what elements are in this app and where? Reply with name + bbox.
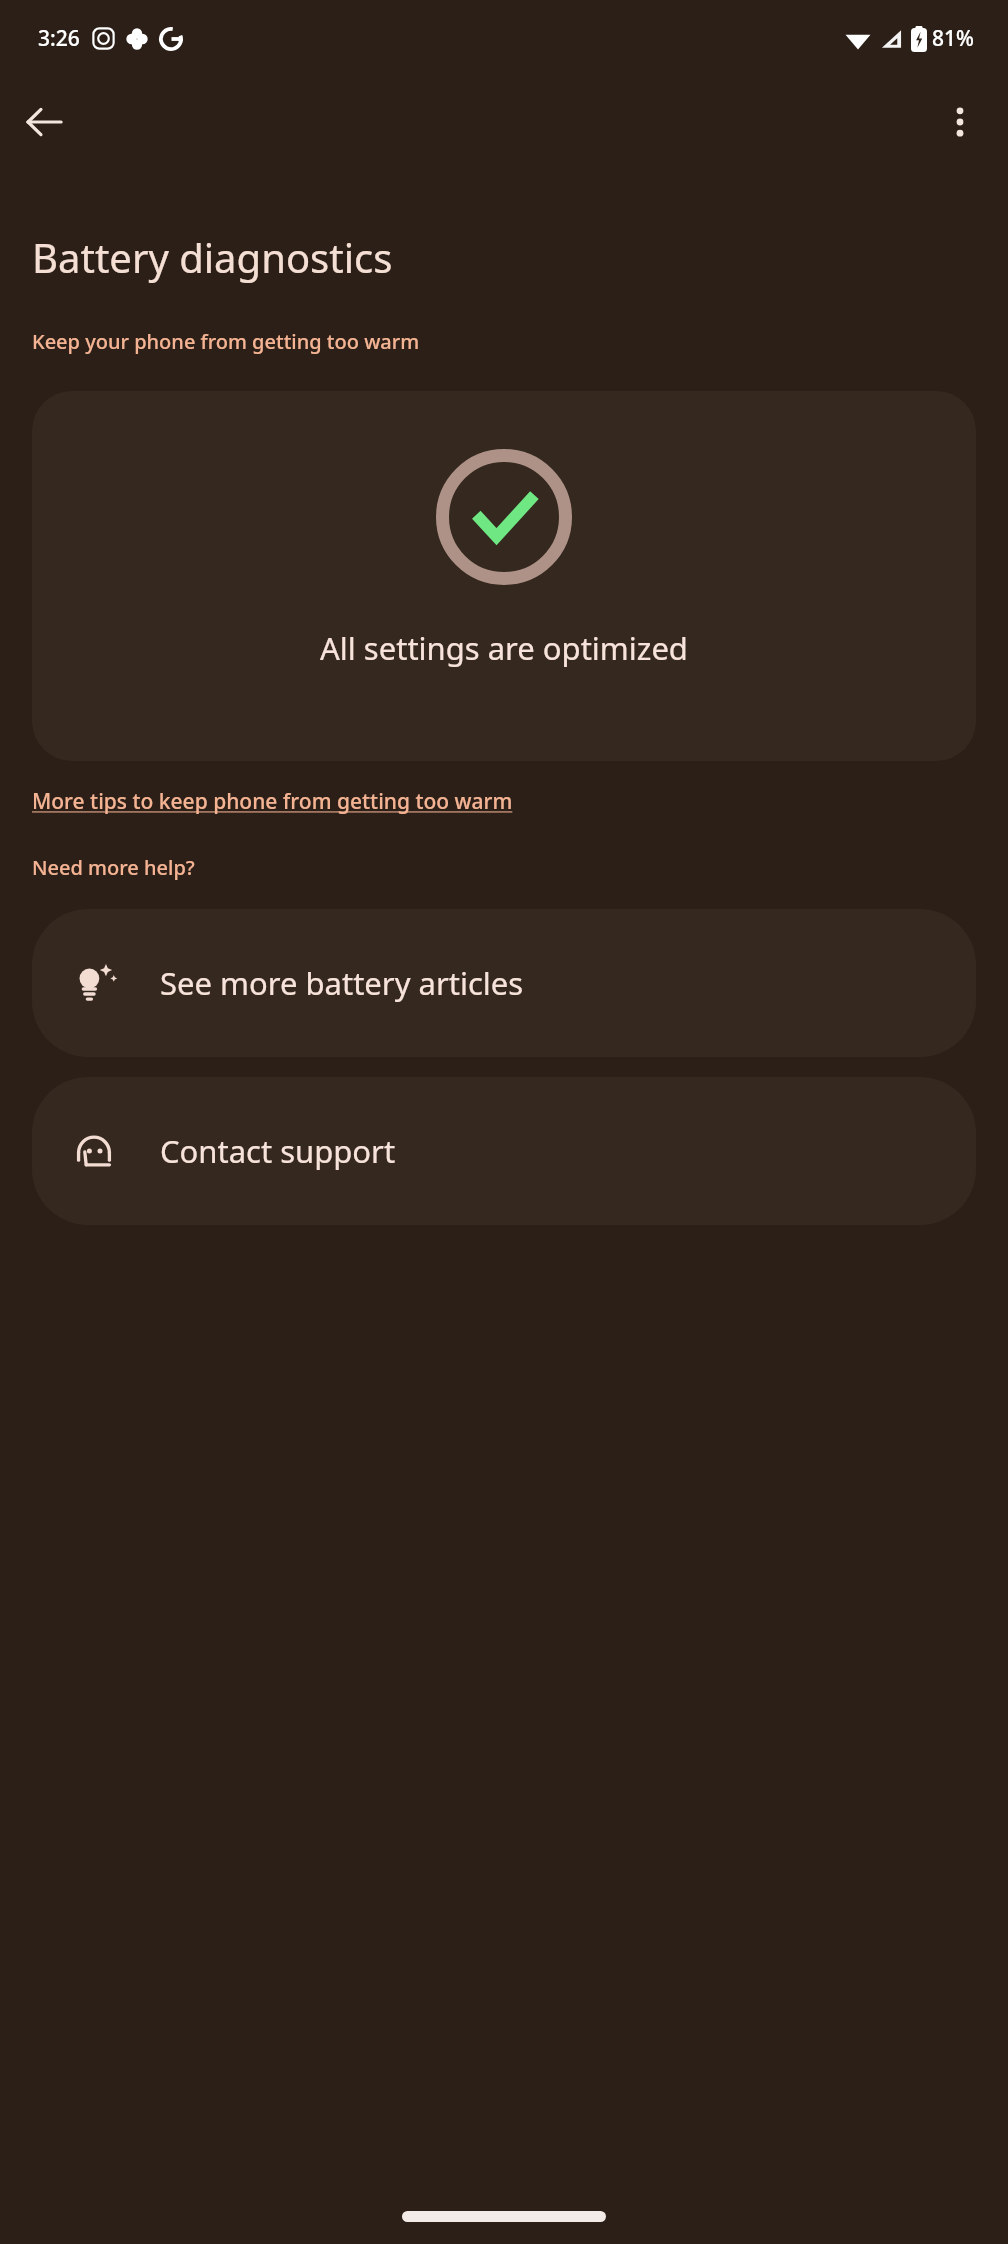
button[interactable]: Back [14, 92, 74, 152]
staticText: Contact support [160, 1130, 396, 1172]
staticText: More tips to keep phone from getting too… [32, 787, 513, 816]
button[interactable]: Contact support [32, 1077, 976, 1225]
button[interactable]: More options [930, 92, 990, 152]
button[interactable]: All settings are optimized [32, 391, 976, 761]
staticText: Need more help? [32, 854, 195, 881]
staticText: Battery diagnostics [32, 230, 393, 284]
staticText: See more battery articles [160, 962, 524, 1004]
button[interactable]: See more battery articles [32, 909, 976, 1057]
staticText: 81% [932, 24, 974, 53]
staticText: 3:26 [38, 24, 80, 53]
button[interactable]: More tips to keep phone from getting too… [32, 787, 513, 816]
staticText: Keep your phone from getting too warm [32, 328, 420, 355]
staticText: All settings are optimized [320, 627, 688, 669]
